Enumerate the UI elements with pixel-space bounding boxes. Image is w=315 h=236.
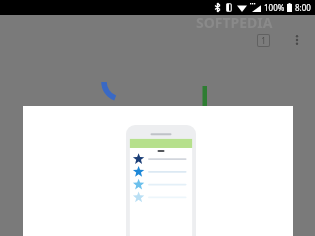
staticText: SOFTPEDIA: [196, 13, 273, 32]
staticText: 8:00: [295, 2, 311, 13]
button[interactable]: More options: [286, 29, 308, 51]
button[interactable]: Tabs, 1 open: [252, 29, 274, 51]
staticText: 1: [261, 35, 266, 46]
staticText: 100%: [264, 2, 285, 13]
